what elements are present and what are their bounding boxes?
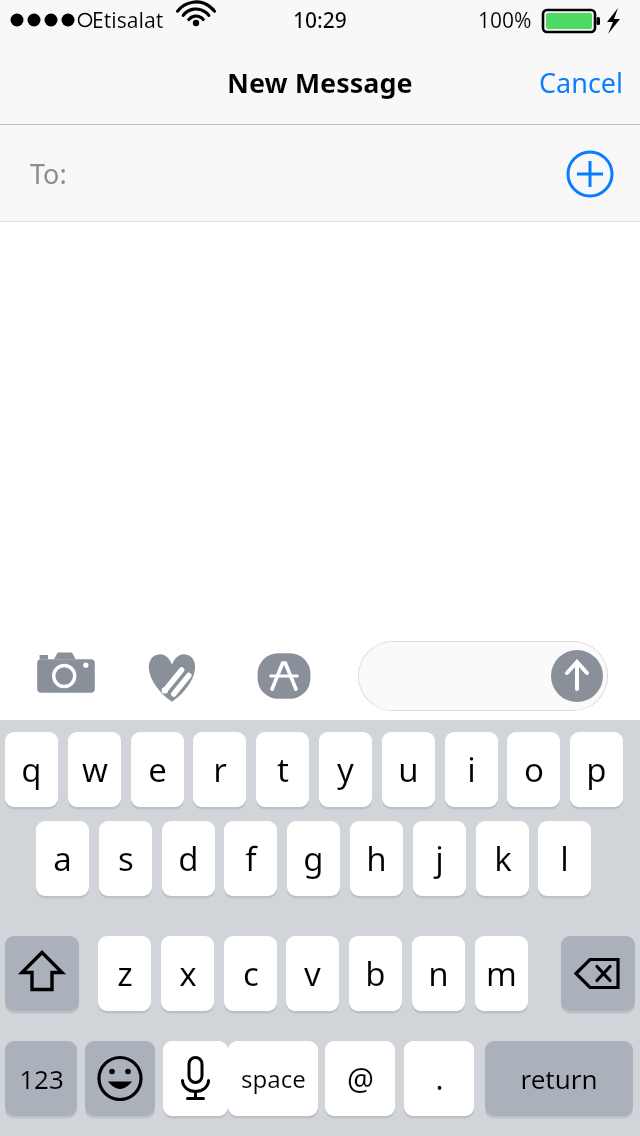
staticText: d	[178, 836, 199, 881]
button[interactable]: a	[36, 821, 89, 896]
button[interactable]: g	[287, 821, 340, 896]
staticText: e	[148, 747, 167, 792]
button[interactable]: v	[286, 936, 339, 1011]
staticText: 100%	[478, 6, 532, 35]
button[interactable]: Camera	[36, 646, 96, 706]
staticText: 10:29	[293, 6, 347, 35]
staticText: z	[117, 951, 133, 996]
button[interactable]: Shift	[5, 936, 79, 1011]
staticText: Etisalat	[92, 6, 164, 35]
button[interactable]: x	[161, 936, 214, 1011]
staticText: n	[428, 951, 449, 996]
button[interactable]: App Store	[254, 646, 314, 706]
button[interactable]: c	[224, 936, 277, 1011]
button[interactable]: t	[256, 732, 309, 807]
button[interactable]: z	[98, 936, 151, 1011]
button[interactable]: f	[224, 821, 277, 896]
staticText: u	[398, 747, 419, 792]
staticText: o	[524, 747, 544, 792]
staticText: space	[241, 1062, 306, 1095]
staticText: .	[435, 1058, 444, 1099]
button[interactable]: space	[228, 1041, 318, 1116]
staticText: return	[520, 1061, 598, 1096]
staticText: g	[303, 836, 324, 881]
button[interactable]: Backspace	[561, 936, 635, 1011]
staticText: s	[118, 836, 134, 881]
button[interactable]: w	[68, 732, 121, 807]
button[interactable]: Emoji	[85, 1041, 155, 1116]
button[interactable]: To:	[0, 125, 640, 222]
staticText: f	[245, 836, 257, 881]
staticText: x	[179, 951, 197, 996]
button[interactable]: i	[445, 732, 498, 807]
button[interactable]: .	[404, 1041, 474, 1116]
button[interactable]: n	[412, 936, 465, 1011]
staticText: q	[21, 747, 42, 792]
staticText: a	[53, 836, 72, 881]
staticText: t	[277, 747, 289, 792]
staticText: h	[366, 836, 387, 881]
button[interactable]: m	[475, 936, 528, 1011]
staticText: b	[365, 951, 386, 996]
button[interactable]: return	[485, 1041, 633, 1116]
button[interactable]: Send	[358, 641, 608, 711]
staticText: w	[82, 747, 108, 792]
button[interactable]: d	[162, 821, 215, 896]
staticText: 123	[19, 1061, 64, 1096]
button[interactable]: Add contact	[566, 150, 614, 198]
button[interactable]: o	[507, 732, 560, 807]
button[interactable]: u	[382, 732, 435, 807]
button[interactable]: Cancel	[523, 54, 640, 111]
staticText: j	[435, 836, 444, 881]
staticText: k	[494, 836, 512, 881]
button[interactable]: p	[570, 732, 623, 807]
button[interactable]: l	[538, 821, 591, 896]
button[interactable]: h	[350, 821, 403, 896]
staticText: y	[337, 747, 354, 792]
button[interactable]: b	[349, 936, 402, 1011]
staticText: i	[467, 747, 476, 792]
button[interactable]: k	[476, 821, 529, 896]
staticText: v	[304, 951, 321, 996]
button[interactable]: e	[131, 732, 184, 807]
button[interactable]: j	[413, 821, 466, 896]
staticText: l	[560, 836, 569, 881]
button[interactable]: y	[319, 732, 372, 807]
button[interactable]: 123	[5, 1041, 77, 1116]
button[interactable]: Send	[551, 650, 603, 702]
staticText: m	[486, 951, 517, 996]
button[interactable]: @	[325, 1041, 395, 1116]
button[interactable]: r	[193, 732, 246, 807]
staticText: New Message	[227, 64, 413, 101]
button[interactable]: q	[5, 732, 58, 807]
staticText: To:	[30, 155, 67, 192]
staticText: @	[347, 1058, 374, 1099]
staticText: r	[213, 747, 227, 792]
staticText: c	[243, 951, 259, 996]
button[interactable]: Dictate	[163, 1041, 228, 1116]
staticText: p	[586, 747, 607, 792]
button[interactable]: Digital Touch	[142, 646, 202, 706]
staticText: Cancel	[539, 64, 624, 101]
button[interactable]: s	[99, 821, 152, 896]
